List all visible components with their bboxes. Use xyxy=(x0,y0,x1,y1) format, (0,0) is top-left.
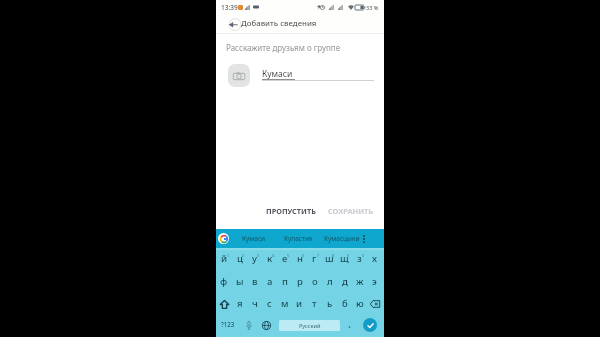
staticText: б xyxy=(342,297,348,310)
button[interactable]: СОХРАНИТЬ xyxy=(323,202,379,220)
button[interactable]: Купастик xyxy=(276,229,320,248)
staticText: я xyxy=(237,297,243,310)
staticText: Добавить сведения xyxy=(241,18,317,29)
button[interactable]: Назад xyxy=(226,16,242,32)
button[interactable]: Кумаси xyxy=(232,229,276,248)
button[interactable]: ы xyxy=(232,271,247,293)
staticText: 5 xyxy=(287,253,290,258)
staticText: к xyxy=(267,252,273,265)
staticText: м xyxy=(281,297,289,310)
button[interactable]: д xyxy=(337,271,352,293)
staticText: ь xyxy=(327,297,333,310)
button[interactable]: Готово xyxy=(363,318,377,332)
button[interactable]: р xyxy=(292,271,307,293)
button[interactable]: Кумасцыки xyxy=(320,229,364,248)
staticText: 33 % xyxy=(366,4,379,11)
button[interactable]: ю xyxy=(352,293,367,315)
staticText: ц xyxy=(237,252,243,265)
staticText: 4 xyxy=(272,253,275,258)
button[interactable]: в xyxy=(247,271,262,293)
staticText: ш xyxy=(325,252,334,265)
button[interactable]: ч xyxy=(247,293,262,315)
staticText: 9 xyxy=(347,253,350,258)
button[interactable]: е xyxy=(277,248,292,271)
staticText: ч xyxy=(252,297,258,310)
staticText: п xyxy=(282,275,288,288)
button[interactable]: ?123 xyxy=(220,318,236,332)
staticText: у xyxy=(252,252,258,265)
staticText: 6 xyxy=(302,253,305,258)
button[interactable]: б xyxy=(337,293,352,315)
button[interactable]: ПРОПУСТИТЬ xyxy=(261,202,321,220)
staticText: г xyxy=(312,252,317,265)
staticText: 1 xyxy=(227,253,230,258)
staticText: ж xyxy=(356,275,364,288)
button[interactable]: ж xyxy=(352,271,367,293)
button[interactable]: о xyxy=(307,271,322,293)
button[interactable]: Google xyxy=(218,233,229,244)
button[interactable]: й xyxy=(216,248,232,271)
staticText: Кумасцыки xyxy=(324,234,360,243)
button[interactable]: Сменить язык xyxy=(259,317,273,333)
button[interactable]: Удалить xyxy=(367,293,382,315)
staticText: 7 xyxy=(317,253,320,258)
staticText: с xyxy=(267,297,272,310)
staticText: в xyxy=(252,275,258,288)
button[interactable]: к xyxy=(262,248,277,271)
staticText: СОХРАНИТЬ xyxy=(328,206,374,216)
staticText: р xyxy=(297,275,303,288)
button[interactable]: и xyxy=(292,293,307,315)
staticText: Расскажите друзьям о группе xyxy=(226,42,341,53)
staticText: о xyxy=(312,275,318,288)
button[interactable]: а xyxy=(262,271,277,293)
staticText: Кумаси xyxy=(242,234,266,243)
button[interactable]: п xyxy=(277,271,292,293)
staticText: д xyxy=(342,275,348,288)
staticText: ?123 xyxy=(221,320,235,328)
button[interactable]: Русский xyxy=(279,320,340,331)
button[interactable]: т xyxy=(307,293,322,315)
staticText: 3 xyxy=(257,253,260,258)
staticText: т xyxy=(312,297,317,310)
staticText: ПРОПУСТИТЬ xyxy=(266,206,316,216)
staticText: э xyxy=(372,275,377,288)
staticText: 13:39 xyxy=(221,3,238,12)
button[interactable] xyxy=(343,318,355,332)
staticText: л xyxy=(327,275,333,288)
staticText: х xyxy=(372,252,378,265)
button[interactable]: щ xyxy=(337,248,352,271)
button[interactable]: ш xyxy=(322,248,337,271)
staticText: з xyxy=(357,252,362,265)
staticText: ю xyxy=(356,297,364,310)
button[interactable]: я xyxy=(232,293,247,315)
button[interactable]: ф xyxy=(216,271,232,293)
staticText: Русский xyxy=(299,322,321,329)
button[interactable]: х xyxy=(367,248,382,271)
button[interactable]: Регистр xyxy=(216,293,232,315)
button[interactable]: м xyxy=(277,293,292,315)
button[interactable]: Ещё варианты xyxy=(359,229,369,248)
button[interactable]: н xyxy=(292,248,307,271)
staticText: 0 xyxy=(362,253,365,258)
staticText: и xyxy=(296,297,303,310)
staticText: Купастик xyxy=(284,234,313,243)
button[interactable]: э xyxy=(367,271,382,293)
button[interactable]: с xyxy=(262,293,277,315)
button[interactable]: ь xyxy=(322,293,337,315)
staticText: ы xyxy=(236,275,244,288)
staticText: щ xyxy=(340,252,349,265)
button[interactable]: л xyxy=(322,271,337,293)
staticText: а xyxy=(267,275,273,288)
button[interactable]: у xyxy=(247,248,262,271)
staticText: Кумаси xyxy=(262,68,293,80)
button[interactable]: Голосовой ввод xyxy=(242,317,256,333)
button[interactable]: з xyxy=(352,248,367,271)
button[interactable]: Добавить фото группы xyxy=(228,64,250,87)
staticText: 2 xyxy=(242,253,245,258)
staticText: н xyxy=(297,252,303,265)
button[interactable]: ц xyxy=(232,248,247,271)
staticText: й xyxy=(221,252,228,265)
staticText: 8 xyxy=(332,253,335,258)
staticText: е xyxy=(282,252,288,265)
button[interactable]: г xyxy=(307,248,322,271)
